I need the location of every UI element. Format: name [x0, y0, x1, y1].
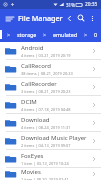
staticText: 20:35: [85, 1, 98, 8]
staticText: storage: [17, 31, 37, 38]
button[interactable]: Movies: [0, 168, 101, 180]
staticText: Android: [21, 44, 44, 52]
staticText: 38 items | 08-21, 2019 20:23: [21, 71, 73, 76]
button[interactable]: Download: [0, 114, 101, 131]
button[interactable]: Android: [0, 42, 101, 59]
button[interactable]: More options: [87, 13, 97, 23]
staticText: emulated: [53, 31, 78, 38]
button[interactable]: emulated: [52, 31, 79, 38]
button[interactable]: >: [83, 31, 89, 38]
button[interactable]: FoxEyes: [0, 150, 101, 167]
staticText: Download: [21, 116, 50, 124]
button[interactable]: Back: [64, 13, 75, 24]
button[interactable]: >: [42, 31, 48, 38]
staticText: Movies: [21, 168, 41, 176]
staticText: File Manager: [18, 13, 63, 23]
staticText: 4 items | 03-21, 2019 20:19: [21, 53, 71, 58]
staticText: 1 item | 03-13, 2019 10:24: [21, 161, 69, 166]
staticText: 3 items | 08-21, 2019 20:23: [21, 89, 71, 94]
staticText: 31%: [66, 2, 75, 8]
button[interactable]: storage: [16, 31, 38, 38]
button[interactable]: Open navigation menu: [4, 13, 15, 24]
staticText: FoxEyes: [21, 152, 44, 160]
staticText: CallRecorder: [21, 80, 57, 88]
button[interactable]: 0: [93, 31, 99, 38]
button[interactable]: >: [6, 31, 12, 38]
staticText: 1 item | 08-20, 2019 02:41: [21, 177, 69, 180]
staticText: 2 items | 04-13, 2019 09:07: [21, 143, 71, 148]
staticText: Download Music Player: [21, 134, 87, 142]
staticText: >: [7, 31, 11, 38]
staticText: >: [43, 31, 47, 38]
staticText: 4 items | 07-18, 2019 04:48: [21, 107, 71, 112]
button[interactable]: Search: [75, 12, 87, 24]
staticText: 4 items | 08-24, 2019 11:31: [21, 125, 71, 130]
staticText: DCIM: [21, 98, 37, 106]
button[interactable]: Download Music Player: [0, 132, 101, 149]
staticText: CallRecord: [21, 62, 51, 70]
button[interactable]: CallRecord: [0, 60, 101, 77]
staticText: >: [84, 31, 88, 38]
staticText: 0: [94, 31, 98, 38]
button[interactable]: DCIM: [0, 96, 101, 113]
button[interactable]: CallRecorder: [0, 78, 101, 95]
